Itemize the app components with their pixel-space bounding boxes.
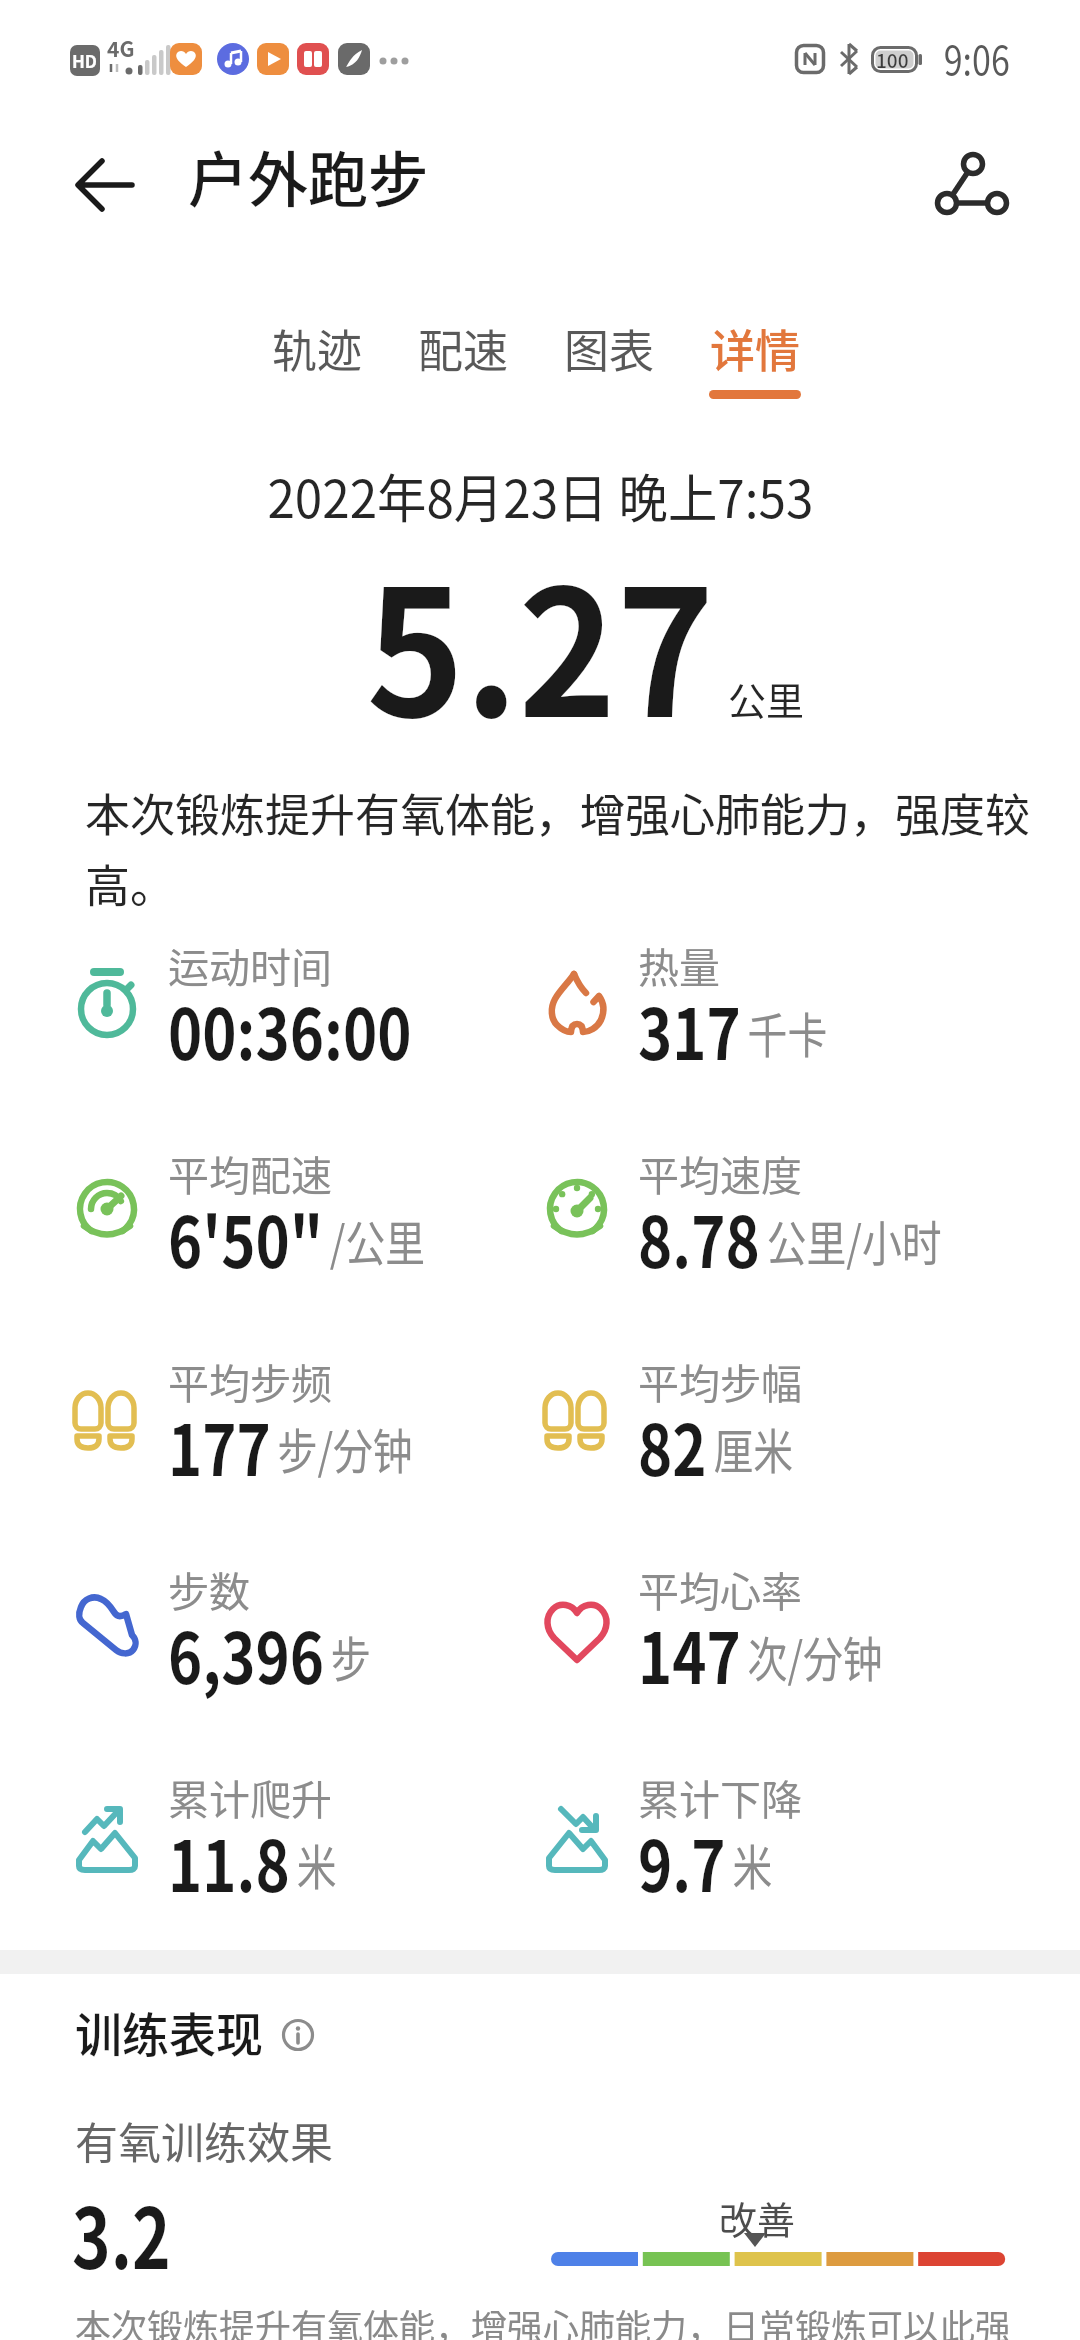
button[interactable]: [71, 1147, 491, 1297]
button[interactable]: [282, 2019, 314, 2051]
staticText: 4G: [107, 33, 135, 63]
button[interactable]: [541, 1771, 961, 1921]
staticText: 2022年8月23日 晚上7:53: [267, 458, 814, 533]
staticText: 317: [638, 979, 741, 1080]
staticText: 米: [297, 1829, 337, 1899]
staticText: 3.2: [72, 2172, 171, 2294]
staticText: 改善: [719, 2190, 796, 2245]
button[interactable]: [71, 939, 491, 1089]
button[interactable]: [541, 1355, 961, 1505]
staticText: 6,396: [168, 1603, 324, 1704]
staticText: 147: [638, 1603, 741, 1704]
staticText: 100: [876, 46, 909, 73]
staticText: 00:36:00: [168, 979, 412, 1080]
staticText: 步/分钟: [278, 1413, 413, 1483]
staticText: 9:06: [944, 29, 1010, 87]
button[interactable]: [71, 1771, 491, 1921]
staticText: 图表: [564, 316, 655, 381]
staticText: 本次锻炼提升有氧体能，增强心肺能力，强度较 高。: [85, 780, 1031, 916]
staticText: 热量: [638, 935, 720, 994]
staticText: 累计爬升: [168, 1767, 332, 1826]
staticText: 详情: [710, 316, 801, 381]
button[interactable]: [71, 1563, 491, 1713]
staticText: 训练表现: [75, 1997, 263, 2065]
button[interactable]: [541, 1563, 961, 1713]
staticText: 厘米: [713, 1413, 794, 1483]
staticText: 平均心率: [638, 1559, 802, 1618]
staticText: 千卡: [748, 997, 828, 1067]
staticText: 户外跑步: [188, 132, 428, 219]
button[interactable]: [541, 939, 961, 1089]
staticText: 本次锻炼提升有氧体能，增强心肺能力，日常锻炼可以此强: [75, 2299, 1012, 2340]
staticText: 177: [168, 1395, 271, 1496]
staticText: /公里: [330, 1205, 425, 1275]
staticText: 米: [733, 1829, 773, 1899]
staticText: 步数: [168, 1559, 250, 1618]
staticText: 运动时间: [168, 935, 332, 994]
staticText: 公里/小时: [767, 1205, 942, 1275]
staticText: 有氧训练效果: [75, 2109, 333, 2171]
button[interactable]: [71, 1355, 491, 1505]
staticText: 平均配速: [168, 1143, 332, 1202]
staticText: 步: [331, 1621, 371, 1691]
staticText: 9.7: [638, 1811, 726, 1912]
button[interactable]: [541, 1147, 961, 1297]
staticText: 轨迹: [272, 316, 363, 381]
staticText: 累计下降: [638, 1767, 802, 1826]
button[interactable]: [916, 140, 1012, 226]
staticText: 平均步频: [168, 1351, 332, 1410]
button[interactable]: 配速: [417, 316, 509, 390]
staticText: 8.78: [638, 1187, 760, 1288]
button[interactable]: 轨迹: [271, 316, 363, 390]
staticText: 次/分钟: [748, 1621, 883, 1691]
button[interactable]: 图表: [563, 316, 655, 390]
staticText: 5.27: [366, 514, 715, 767]
staticText: 平均速度: [638, 1143, 802, 1202]
staticText: HD: [72, 48, 98, 73]
staticText: 11.8: [168, 1811, 290, 1912]
button[interactable]: 详情: [709, 316, 801, 390]
staticText: 平均步幅: [638, 1351, 802, 1410]
button[interactable]: [68, 155, 148, 215]
staticText: 配速: [418, 316, 509, 381]
staticText: 82: [638, 1395, 707, 1496]
staticText: 公里: [728, 671, 805, 726]
staticText: 6'50": [168, 1187, 323, 1288]
